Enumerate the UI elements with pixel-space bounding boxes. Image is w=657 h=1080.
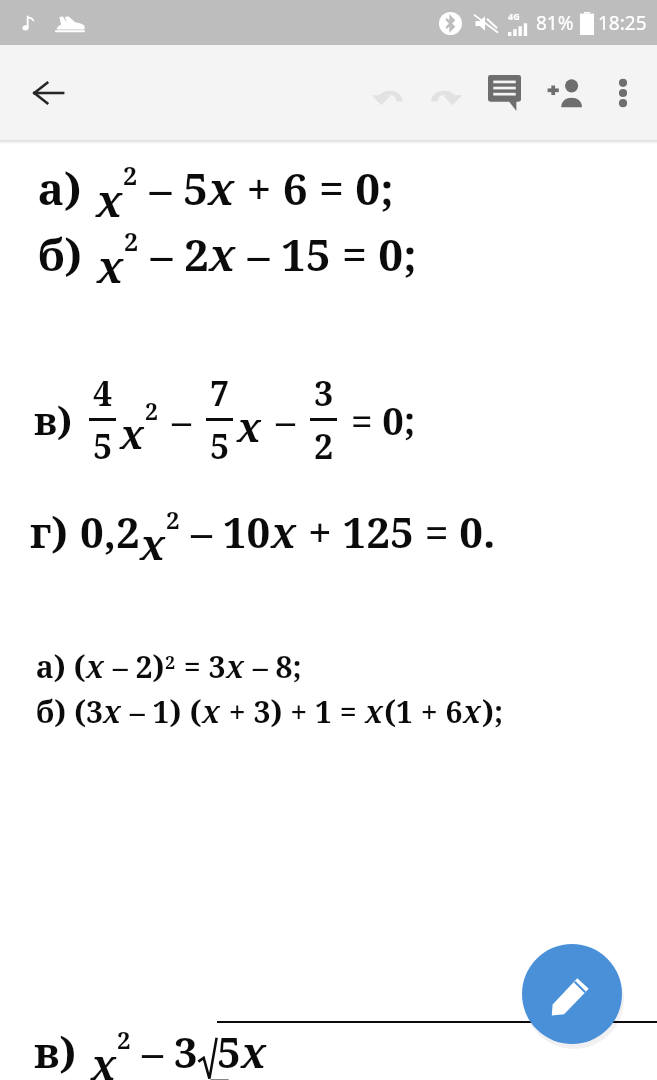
staticText: б) (3	[36, 691, 103, 732]
staticText: x	[271, 503, 297, 560]
staticText: x	[209, 224, 236, 284]
staticText: 4G	[508, 10, 520, 22]
staticText: x	[463, 691, 482, 732]
staticText: 2	[314, 423, 334, 469]
staticText: = 0;	[351, 394, 416, 446]
staticText: 3	[314, 370, 334, 416]
staticText: 7	[210, 370, 230, 416]
button[interactable]: Add person	[535, 62, 597, 124]
button[interactable]: Back	[22, 67, 74, 119]
staticText: x	[208, 158, 235, 218]
staticText: 4	[93, 370, 113, 416]
staticText: – 15 = 0;	[236, 224, 417, 284]
staticText: 0,2	[80, 503, 140, 560]
staticText: – 10	[180, 503, 271, 560]
staticText: );	[482, 691, 504, 732]
staticText: – 5	[138, 158, 208, 218]
staticText: 2	[166, 503, 180, 536]
staticText: (1 + 6	[384, 691, 463, 732]
staticText: x	[241, 1023, 267, 1080]
staticText: + 125 = 0.	[297, 503, 496, 560]
staticText: – 2	[139, 224, 209, 284]
staticText: в)	[34, 1023, 77, 1080]
staticText: 2	[165, 650, 176, 675]
staticText: x	[237, 399, 262, 453]
staticText: x	[365, 691, 384, 732]
staticText: 18:25	[598, 10, 647, 36]
staticText: в)	[34, 394, 73, 446]
staticText: x	[140, 515, 166, 572]
button[interactable]: Comment	[473, 62, 535, 124]
staticText: x	[96, 170, 123, 230]
button[interactable]: Edit	[522, 944, 622, 1044]
staticText: 5	[93, 423, 113, 469]
staticText: x	[97, 236, 124, 296]
staticText: г)	[30, 503, 68, 560]
staticText: –	[276, 394, 296, 446]
staticText: + 6 = 0;	[235, 158, 394, 218]
staticText: –	[172, 394, 192, 446]
staticText: – 2)	[105, 646, 165, 687]
staticText: 2	[124, 224, 139, 258]
staticText: + 3) + 1 =	[221, 691, 365, 732]
staticText: x	[202, 691, 221, 732]
staticText: а)	[38, 158, 82, 218]
staticText: x	[91, 1035, 117, 1080]
staticText: = 3	[176, 646, 226, 687]
staticText: x	[226, 646, 245, 687]
staticText: 5	[210, 423, 230, 469]
staticText: – 8;	[245, 646, 302, 687]
staticText: 2	[117, 1023, 131, 1056]
button[interactable]: More options	[597, 67, 649, 119]
staticText: а) (	[36, 646, 86, 687]
staticText: – 3	[131, 1023, 198, 1080]
staticText: x	[86, 646, 105, 687]
button[interactable]: Redo	[417, 65, 473, 121]
staticText: 2	[123, 158, 138, 192]
staticText: 5	[217, 1023, 241, 1080]
staticText: 81%	[536, 10, 574, 36]
staticText: x	[103, 691, 122, 732]
staticText: x	[120, 406, 145, 460]
staticText: 2	[145, 395, 158, 426]
staticText: – 1) (	[122, 691, 202, 732]
button[interactable]: Undo	[361, 65, 417, 121]
staticText: б)	[38, 224, 83, 284]
